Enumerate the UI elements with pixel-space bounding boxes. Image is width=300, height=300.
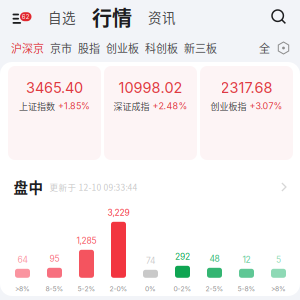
staticText: 0-2% — [173, 285, 191, 293]
staticText: 新三板 — [184, 40, 217, 56]
staticText: >8% — [15, 285, 30, 293]
staticText: 74 — [146, 255, 155, 266]
staticText: 1,285 — [76, 235, 96, 246]
button[interactable]: 京市 — [50, 40, 72, 56]
staticText: +3.07% — [249, 101, 282, 111]
button[interactable]: Menu — [0, 8, 43, 26]
button[interactable]: 科创板 — [145, 40, 178, 56]
button[interactable]: Market filter — [277, 41, 290, 54]
button[interactable]: 新三板 — [184, 40, 217, 56]
staticText: 5-8% — [237, 285, 255, 293]
staticText: 2-5% — [205, 285, 223, 293]
button[interactable]: 全 — [259, 40, 270, 56]
staticText: 京市 — [50, 40, 72, 56]
staticText: 8-5% — [45, 285, 63, 293]
staticText: 292 — [175, 251, 190, 262]
button[interactable]: 自选 — [43, 7, 81, 27]
staticText: 64 — [17, 254, 27, 265]
staticText: 0% — [145, 285, 156, 293]
button[interactable]: 行情 — [87, 2, 137, 31]
staticText: 深证成指 — [113, 99, 149, 112]
staticText: 2-0% — [109, 285, 127, 293]
staticText: 创业板 — [106, 40, 139, 56]
button[interactable]: 盘中 — [0, 176, 300, 198]
staticText: 股指 — [78, 40, 100, 56]
button[interactable]: Search — [271, 9, 300, 25]
staticText: >8% — [271, 285, 286, 293]
staticText: 10998.02 — [118, 79, 182, 96]
staticText: +2.48% — [152, 101, 187, 111]
staticText: 62 — [22, 13, 30, 20]
staticText: 资讯 — [148, 7, 176, 27]
button[interactable]: 10998.02 — [104, 66, 197, 160]
staticText: 3,229 — [107, 207, 129, 218]
staticText: 5 — [276, 254, 281, 265]
button[interactable]: 3465.40 — [8, 66, 101, 160]
staticText: 95 — [49, 253, 59, 264]
staticText: 5-2% — [77, 285, 95, 293]
button[interactable]: 创业板 — [106, 40, 139, 56]
staticText: 自选 — [48, 7, 76, 27]
staticText: 科创板 — [145, 40, 178, 56]
staticText: 全 — [259, 40, 270, 56]
staticText: 沪深京 — [11, 40, 44, 56]
staticText: 12 — [242, 254, 250, 265]
staticText: 创业板指 — [210, 99, 246, 112]
staticText: 48 — [209, 253, 219, 264]
staticText: +1.85% — [58, 101, 90, 111]
staticText: 2317.68 — [220, 79, 272, 96]
staticText: 上证指数 — [19, 99, 55, 112]
button[interactable]: 沪深京 — [11, 40, 44, 56]
staticText: 行情 — [92, 2, 132, 31]
button[interactable]: 资讯 — [143, 7, 181, 27]
staticText: 3465.40 — [26, 79, 83, 96]
button[interactable]: 股指 — [78, 40, 100, 56]
staticText: 更新于 12-10 09:33:44 — [49, 181, 137, 193]
staticText: 盘中 — [13, 176, 43, 197]
button[interactable]: 2317.68 — [200, 66, 293, 160]
